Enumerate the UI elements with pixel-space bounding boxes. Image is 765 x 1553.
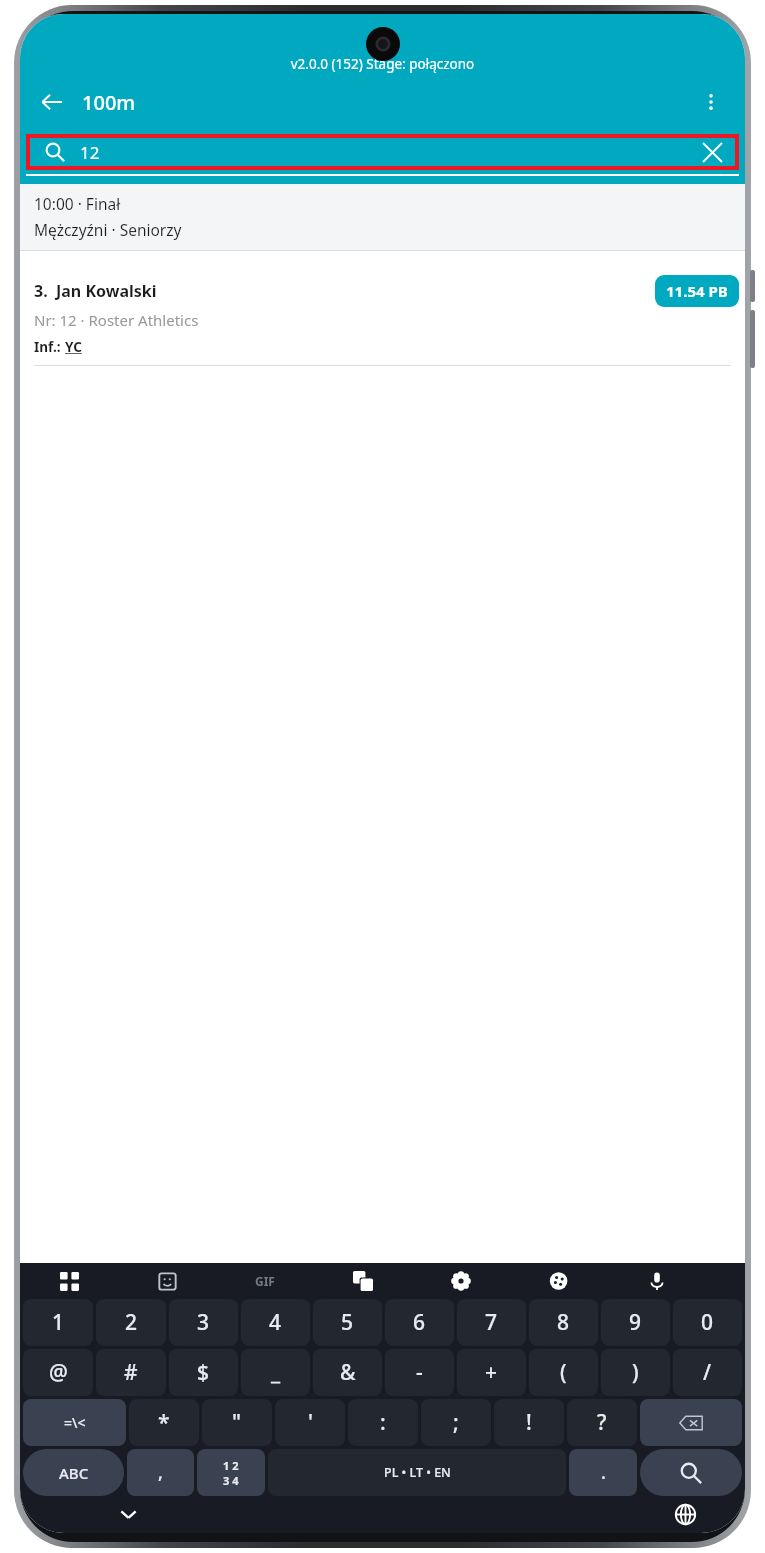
staticText: ) <box>632 1358 639 1387</box>
staticText: ' <box>308 1408 313 1437</box>
staticText: _ <box>271 1358 281 1387</box>
button[interactable]: # <box>96 1349 166 1396</box>
button[interactable]: Stickers <box>118 1263 216 1299</box>
staticText: Nr: 12 · Roster Athletics <box>34 310 199 330</box>
staticText: " <box>232 1408 242 1437</box>
staticText: @ <box>49 1358 68 1387</box>
staticText: 1 2 <box>223 1458 239 1473</box>
button[interactable]: Keyboard switcher <box>20 1263 118 1299</box>
staticText: & <box>340 1358 356 1387</box>
button[interactable]: @ <box>23 1349 93 1396</box>
button[interactable]: GIF <box>216 1263 314 1299</box>
button[interactable]: 2 <box>96 1299 166 1346</box>
button[interactable]: ( <box>529 1349 598 1396</box>
staticText: 100m <box>82 89 136 116</box>
button[interactable]: Back <box>28 78 76 126</box>
staticText: $ <box>197 1358 210 1387</box>
button[interactable]: . <box>569 1449 637 1496</box>
staticText: , <box>158 1460 163 1485</box>
staticText: 11.54 PB <box>666 281 728 301</box>
button[interactable]: Change language <box>665 1496 705 1533</box>
staticText: GIF <box>255 1273 275 1289</box>
button[interactable]: Clear search <box>689 138 735 166</box>
button[interactable]: 5 <box>313 1299 382 1346</box>
button[interactable]: PL • LT • EN <box>268 1449 566 1496</box>
staticText: - <box>416 1358 423 1387</box>
staticText: v2.0.0 (152) Stage: połączono <box>20 55 745 73</box>
button[interactable]: 7 <box>457 1299 526 1346</box>
button[interactable]: Numbers <box>197 1449 265 1496</box>
staticText: + <box>485 1358 498 1387</box>
staticText: 9 <box>629 1308 642 1337</box>
staticText: =\< <box>64 1413 86 1432</box>
staticText: 10:00 · Finał <box>34 193 121 214</box>
button[interactable]: 12 <box>30 138 735 166</box>
staticText: ? <box>597 1408 607 1437</box>
button[interactable]: ABC <box>23 1449 124 1496</box>
staticText: / <box>703 1358 712 1387</box>
button[interactable]: 3. Jan Kowalski <box>20 251 745 365</box>
button[interactable]: Search <box>640 1449 742 1496</box>
button[interactable]: 9 <box>601 1299 670 1346</box>
button[interactable]: 8 <box>529 1299 598 1346</box>
staticText: 12 <box>80 141 100 164</box>
button[interactable]: ? <box>567 1399 637 1446</box>
button[interactable]: ; <box>421 1399 491 1446</box>
button[interactable]: 0 <box>673 1299 742 1346</box>
button[interactable]: 4 <box>241 1299 310 1346</box>
staticText: 3. Jan Kowalski <box>34 280 157 302</box>
button[interactable]: / <box>673 1349 742 1396</box>
button[interactable]: More options <box>687 78 735 126</box>
button[interactable]: $ <box>169 1349 238 1396</box>
button[interactable]: 11.54 PB <box>655 275 739 307</box>
staticText: . <box>601 1460 606 1485</box>
button[interactable]: * <box>129 1399 199 1446</box>
button[interactable]: ) <box>601 1349 670 1396</box>
staticText: 7 <box>485 1308 498 1337</box>
button[interactable]: , <box>127 1449 194 1496</box>
staticText: Inf.: <box>34 338 65 356</box>
staticText: * <box>158 1408 170 1437</box>
staticText: 4 <box>269 1308 282 1337</box>
staticText: ABC <box>59 1463 89 1483</box>
staticText: 3 <box>197 1308 210 1337</box>
staticText: 2 <box>125 1308 138 1337</box>
staticText: 3 4 <box>223 1473 239 1488</box>
staticText: 1 <box>52 1308 65 1337</box>
button[interactable]: Settings <box>412 1263 510 1299</box>
button[interactable]: 1 <box>23 1299 93 1346</box>
button[interactable]: & <box>313 1349 382 1396</box>
button[interactable]: Voice input <box>608 1263 706 1299</box>
button[interactable]: 3 <box>169 1299 238 1346</box>
button[interactable]: _ <box>241 1349 310 1396</box>
button[interactable]: Backspace <box>640 1399 742 1446</box>
button[interactable]: : <box>348 1399 418 1446</box>
button[interactable]: 10:00 · Finał <box>20 184 745 250</box>
button[interactable]: ' <box>275 1399 345 1446</box>
staticText: 5 <box>341 1308 354 1337</box>
button[interactable]: =\< <box>23 1399 126 1446</box>
staticText: Mężczyźni · Seniorzy <box>34 219 182 240</box>
button[interactable]: ! <box>494 1399 564 1446</box>
staticText: ; <box>453 1408 459 1437</box>
button[interactable]: - <box>385 1349 454 1396</box>
button[interactable]: Hide keyboard <box>108 1496 148 1533</box>
staticText: ( <box>560 1358 567 1387</box>
staticText: ! <box>526 1408 532 1437</box>
staticText: : <box>380 1408 386 1437</box>
staticText: 0 <box>701 1308 714 1337</box>
staticText: 6 <box>413 1308 426 1337</box>
button[interactable]: Translate <box>314 1263 412 1299</box>
button[interactable]: Themes <box>510 1263 608 1299</box>
staticText: PL • LT • EN <box>384 1464 451 1481</box>
button[interactable]: " <box>202 1399 272 1446</box>
staticText: # <box>124 1358 138 1387</box>
staticText: 8 <box>557 1308 570 1337</box>
button[interactable]: + <box>457 1349 526 1396</box>
button[interactable]: 6 <box>385 1299 454 1346</box>
staticText: YC <box>65 338 82 356</box>
